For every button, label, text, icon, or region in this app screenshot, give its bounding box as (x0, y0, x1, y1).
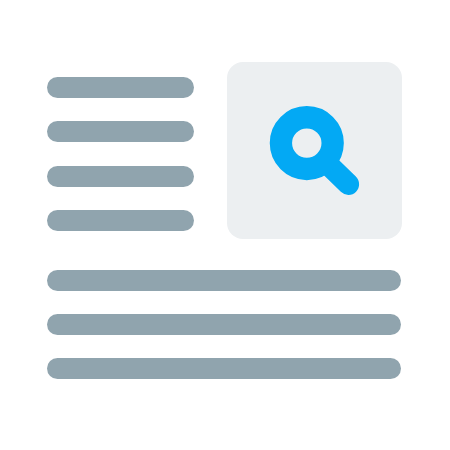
button[interactable]: Search (227, 62, 402, 239)
